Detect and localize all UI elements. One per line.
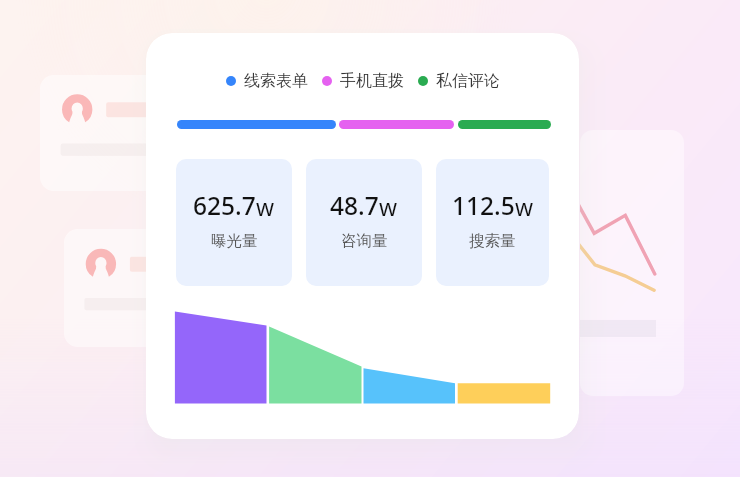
button[interactable]: 48.7 bbox=[306, 159, 422, 286]
staticText: w bbox=[515, 191, 534, 222]
button[interactable]: 线索表单 bbox=[226, 71, 308, 91]
staticText: 48.7 bbox=[330, 189, 379, 222]
staticText: 线索表单 bbox=[244, 71, 308, 91]
staticText: 112.5 bbox=[452, 189, 515, 222]
staticText: 手机直拨 bbox=[340, 71, 404, 91]
staticText: 搜索量 bbox=[469, 231, 516, 251]
staticText: 曝光量 bbox=[211, 231, 258, 251]
button[interactable]: 112.5 bbox=[436, 159, 549, 286]
staticText: 私信评论 bbox=[436, 71, 500, 91]
staticText: 咨询量 bbox=[341, 231, 388, 251]
staticText: w bbox=[256, 191, 275, 222]
staticText: w bbox=[379, 191, 398, 222]
button[interactable]: 私信评论 bbox=[418, 71, 500, 91]
staticText: 625.7 bbox=[193, 189, 256, 222]
button[interactable]: 625.7 bbox=[176, 159, 292, 286]
button[interactable]: 手机直拨 bbox=[322, 71, 404, 91]
